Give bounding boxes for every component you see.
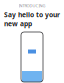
staticText: INTRODUCING: [18, 3, 45, 8]
staticText: Say hello to your new app: [4, 10, 60, 28]
